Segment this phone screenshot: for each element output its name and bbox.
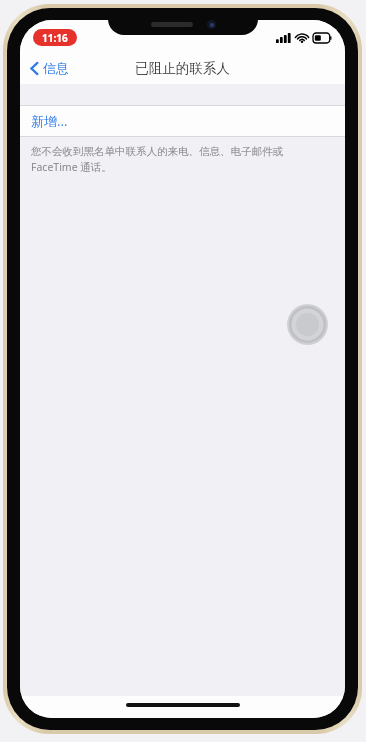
staticText: 11:16: [42, 31, 68, 45]
staticText: 信息: [43, 60, 69, 76]
button[interactable]: 信息: [26, 57, 73, 79]
staticText: 已阻止的联系人: [135, 60, 230, 77]
button[interactable]: AssistiveTouch: [287, 304, 328, 345]
staticText: 您不会收到黑名单中联系人的来电、信息、电子邮件或 FaceTime 通话。: [31, 145, 284, 174]
button[interactable]: 新增...: [20, 106, 345, 136]
staticText: 新增...: [31, 112, 68, 130]
